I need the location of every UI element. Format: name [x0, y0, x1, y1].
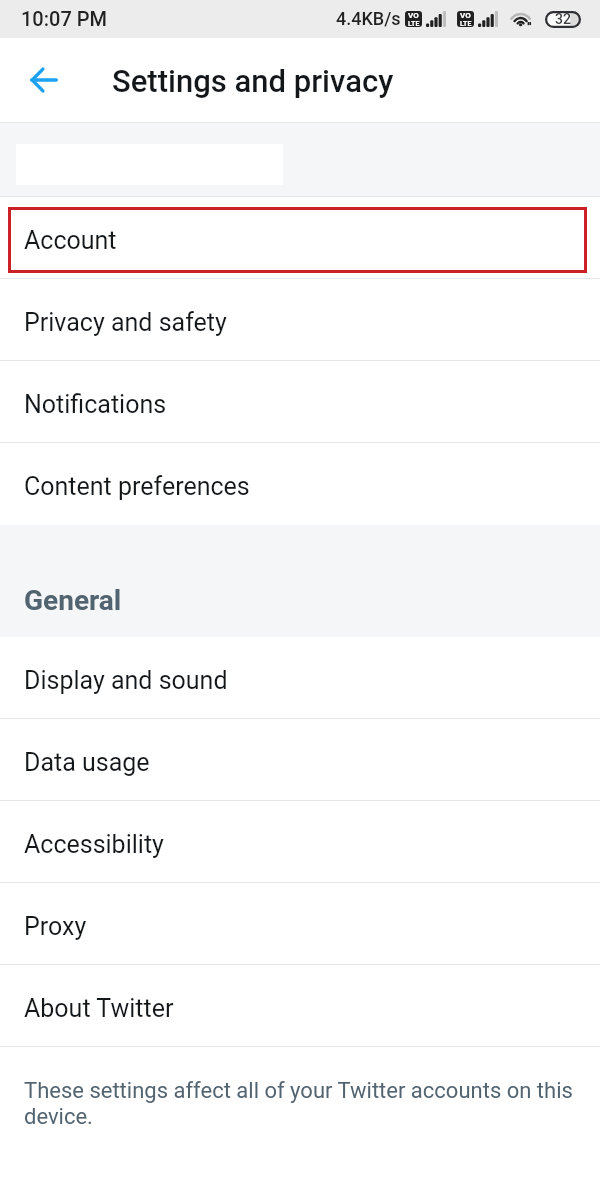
staticText: These settings affect all of your Twitte… — [24, 1078, 584, 1129]
staticText: Settings and privacy — [112, 63, 394, 99]
staticText: Notifications — [24, 390, 167, 419]
button[interactable]: Accessibility — [0, 801, 600, 883]
staticText: VO — [408, 11, 419, 20]
staticText: 32 — [555, 11, 571, 27]
button[interactable]: Back — [16, 52, 72, 108]
button[interactable]: Privacy and safety — [0, 279, 600, 361]
staticText: About Twitter — [24, 994, 174, 1023]
staticText: LTE — [408, 20, 420, 27]
button[interactable]: Display and sound — [0, 637, 600, 719]
staticText: General — [24, 584, 122, 617]
staticText: LTE — [460, 20, 472, 27]
staticText: Content preferences — [24, 472, 250, 501]
staticText: VO — [460, 11, 471, 20]
staticText: 4.4KB/s — [336, 8, 401, 29]
button[interactable]: Proxy — [0, 883, 600, 965]
staticText: Accessibility — [24, 830, 164, 859]
button[interactable]: Content preferences — [0, 443, 600, 525]
staticText: Account — [24, 226, 117, 255]
button[interactable]: Notifications — [0, 361, 600, 443]
button[interactable]: Account — [0, 197, 600, 279]
button[interactable]: Data usage — [0, 719, 600, 801]
button[interactable]: About Twitter — [0, 965, 600, 1047]
staticText: Proxy — [24, 912, 87, 941]
staticText: Display and sound — [24, 666, 228, 695]
staticText: Data usage — [24, 748, 150, 777]
staticText: Privacy and safety — [24, 308, 227, 337]
staticText: 10:07 PM — [21, 7, 108, 30]
